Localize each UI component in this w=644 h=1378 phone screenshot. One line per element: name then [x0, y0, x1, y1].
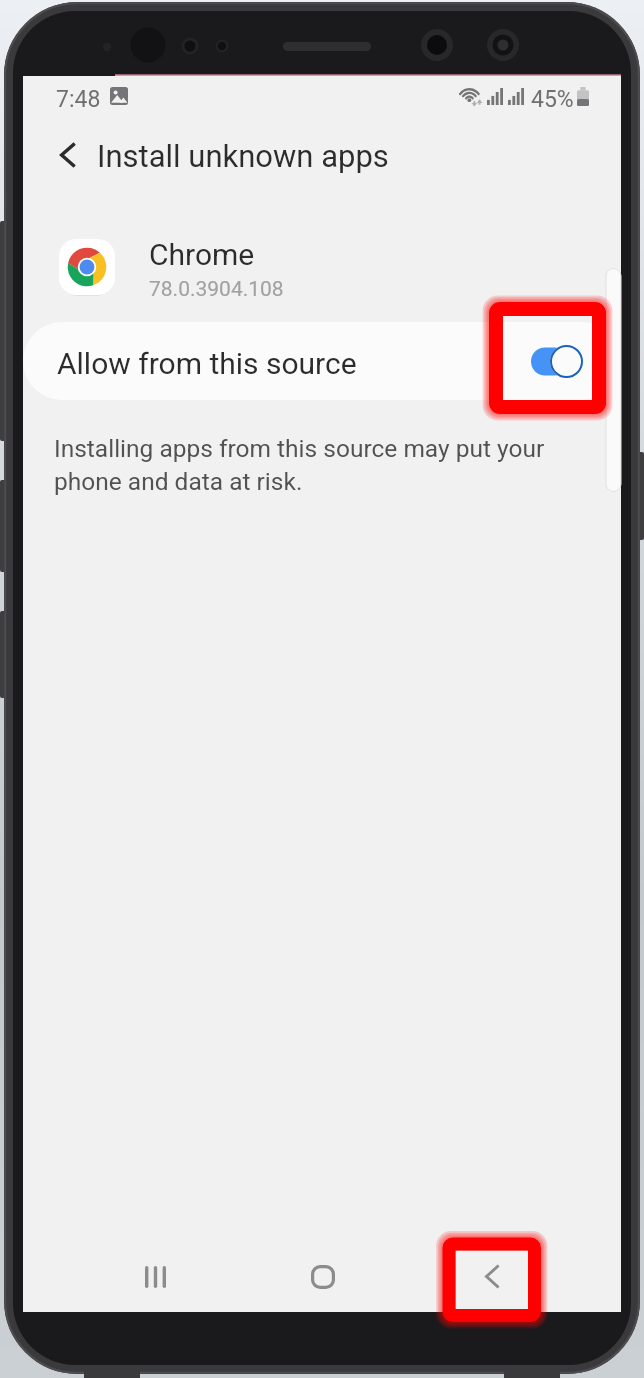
button[interactable]: Back: [446, 1231, 537, 1322]
staticText: Chrome: [149, 237, 255, 272]
button[interactable]: Navigate up: [42, 130, 92, 180]
staticText: Install unknown apps: [97, 138, 389, 174]
button[interactable]: Recent apps: [110, 1231, 201, 1322]
button[interactable]: Home: [277, 1231, 368, 1322]
staticText: Allow from this source: [57, 346, 357, 381]
staticText: 45%: [531, 86, 574, 113]
staticText: Installing apps from this source may put…: [54, 434, 545, 496]
staticText: 7:48: [56, 86, 101, 113]
button[interactable]: [23, 226, 621, 308]
button[interactable]: Allow from this source: [23, 322, 621, 400]
staticText: 78.0.3904.108: [149, 277, 284, 302]
